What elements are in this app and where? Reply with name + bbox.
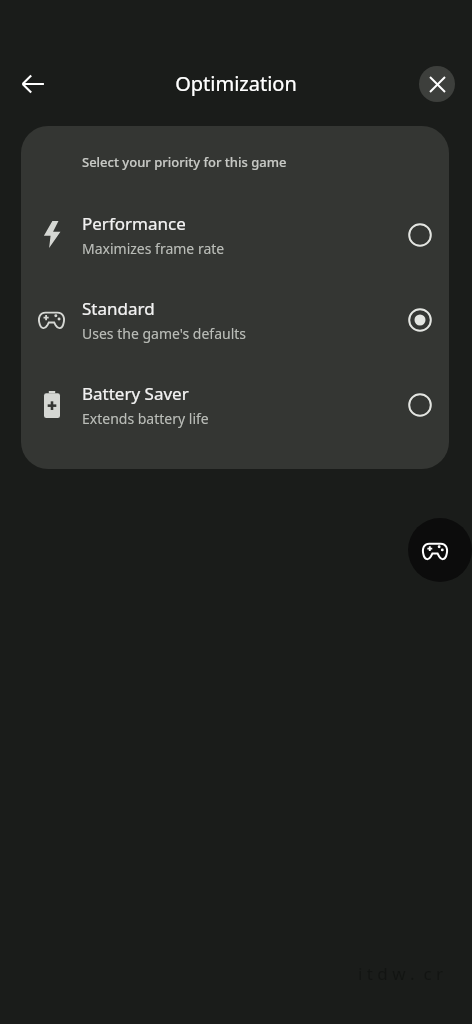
staticText: Standard <box>82 297 155 320</box>
button[interactable]: Game dashboard <box>408 518 472 582</box>
staticText: Battery Saver <box>82 382 189 405</box>
button[interactable]: Close <box>419 66 455 102</box>
staticText: Select your priority for this game <box>82 153 287 171</box>
staticText: Maximizes frame rate <box>82 239 225 258</box>
staticText: Uses the game's defaults <box>82 324 247 343</box>
button[interactable]: Performance <box>21 192 449 277</box>
button[interactable]: Standard <box>21 277 449 362</box>
staticText: Extends battery life <box>82 409 209 428</box>
staticText: Optimization <box>0 70 472 97</box>
button[interactable]: Battery Saver <box>21 362 449 447</box>
staticText: Performance <box>82 212 186 235</box>
button[interactable]: Back <box>9 60 57 108</box>
